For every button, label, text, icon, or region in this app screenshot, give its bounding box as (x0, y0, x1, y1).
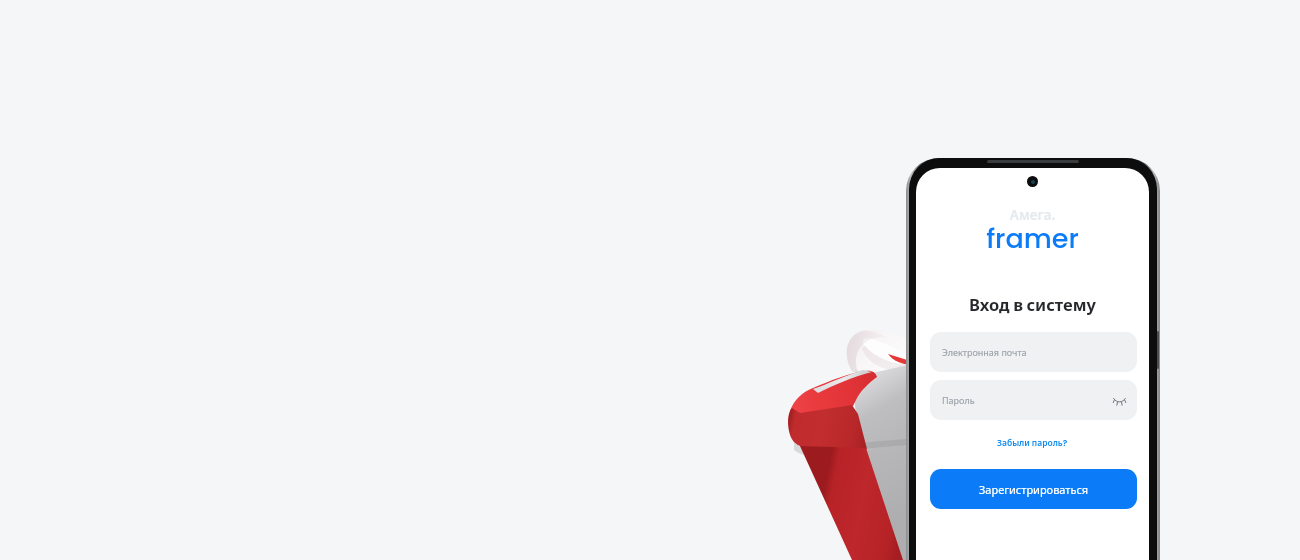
staticText: framer (916, 220, 1149, 258)
button[interactable]: Пароль (930, 380, 1137, 420)
staticText: Электронная почта (942, 346, 1027, 359)
staticText: Вход в систему (916, 293, 1149, 316)
staticText: Забыли пароль? (997, 437, 1068, 449)
staticText: Зарегистрироваться (979, 482, 1089, 497)
button[interactable]: Показать пароль (1113, 394, 1126, 407)
button[interactable]: Забыли пароль? (916, 435, 1149, 451)
staticText: Амега. (916, 206, 1149, 225)
button[interactable]: Зарегистрироваться (930, 469, 1137, 509)
button[interactable]: Электронная почта (930, 332, 1137, 372)
other: Power button (1157, 331, 1159, 369)
staticText: Пароль (942, 394, 975, 406)
